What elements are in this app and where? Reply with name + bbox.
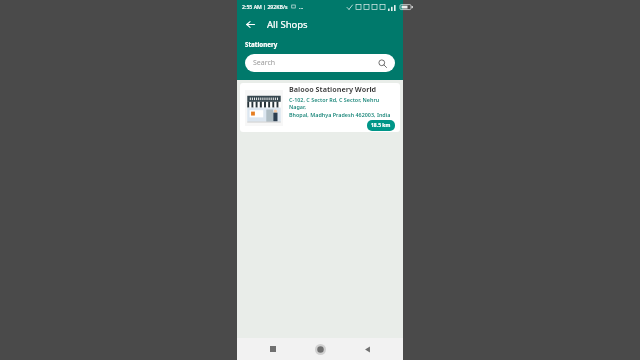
staticText: Stationery [245, 40, 278, 48]
staticText: ... [299, 3, 304, 10]
staticText: Bhopal, Madhya Pradesh 462003, India [289, 111, 391, 118]
staticText: All Shops [267, 18, 308, 31]
button[interactable]: 18.5 km [367, 120, 395, 131]
button[interactable]: Back [356, 338, 378, 360]
staticText: Search [253, 58, 276, 68]
staticText: C-102, C Sector Rd, C Sector, Nehru Naga… [289, 96, 395, 110]
staticText: 2:55 AM | 292KB/s [242, 3, 288, 10]
button[interactable]: Back [242, 16, 258, 32]
other: Search [378, 59, 387, 68]
staticText: 18.5 km [371, 122, 391, 129]
staticText: Balooo Stationery World [289, 84, 377, 94]
button[interactable]: Search [245, 54, 395, 72]
button[interactable]: Home [309, 338, 331, 360]
button[interactable]: Recents [262, 338, 284, 360]
button[interactable]: Balooo Stationery World [240, 83, 400, 132]
